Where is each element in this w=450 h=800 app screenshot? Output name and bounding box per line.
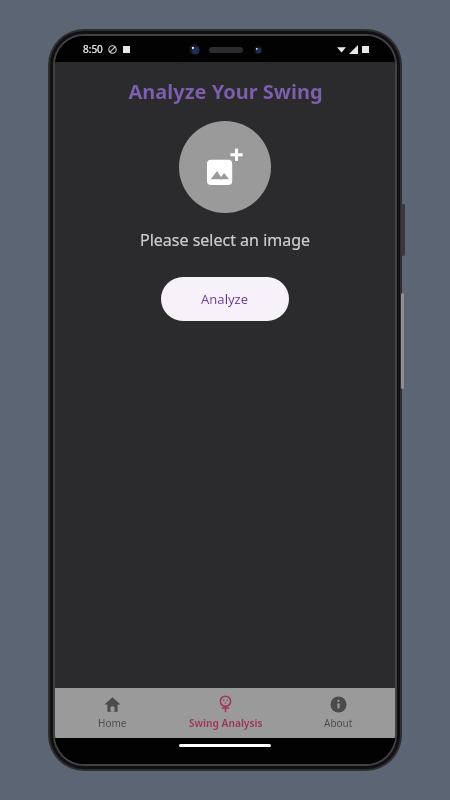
staticText: Please select an image bbox=[140, 229, 311, 251]
staticText: About bbox=[324, 716, 353, 730]
staticText: 8:50 bbox=[83, 42, 103, 56]
button[interactable]: Home bbox=[55, 688, 169, 738]
staticText: Analyze Your Swing bbox=[128, 78, 323, 105]
staticText: Analyze bbox=[201, 290, 249, 308]
button[interactable]: Select an image bbox=[179, 121, 271, 213]
button[interactable]: About bbox=[282, 688, 395, 738]
staticText: Swing Analysis bbox=[189, 716, 263, 730]
staticText: Home bbox=[98, 716, 127, 730]
button[interactable]: Swing Analysis bbox=[169, 688, 282, 738]
button[interactable]: Analyze bbox=[161, 277, 289, 321]
